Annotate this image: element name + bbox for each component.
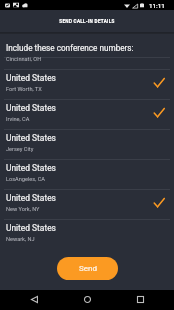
staticText: United States xyxy=(6,103,56,113)
staticText: United States xyxy=(6,133,56,143)
button[interactable]: Back xyxy=(21,289,47,309)
staticText: United States xyxy=(6,73,56,83)
staticText: Cincinnati, OH xyxy=(6,56,42,63)
button[interactable]: Send xyxy=(57,257,118,280)
button[interactable]: Home xyxy=(74,289,100,309)
button[interactable]: Cincinnati, OH xyxy=(0,58,174,69)
staticText: SEND CALL-IN DETAILS xyxy=(59,19,115,24)
button[interactable]: United States xyxy=(0,220,174,249)
button[interactable]: United States xyxy=(0,70,174,99)
staticText: Include these conference numbers: xyxy=(6,43,134,53)
staticText: LosAngeles, CA xyxy=(6,176,45,183)
staticText: Newark, NJ xyxy=(6,236,35,243)
button[interactable]: United States xyxy=(0,130,174,159)
staticText: New York, NY xyxy=(6,206,40,213)
button[interactable]: Recent apps xyxy=(127,289,153,309)
staticText: Irvine, CA xyxy=(6,116,30,123)
staticText: 11:11 xyxy=(149,2,165,9)
staticText: Jersey City xyxy=(6,146,34,153)
staticText: United States xyxy=(6,163,56,173)
button[interactable]: United States xyxy=(0,100,174,129)
staticText: United States xyxy=(6,223,56,233)
button[interactable]: United States xyxy=(0,190,174,219)
button[interactable]: United States xyxy=(0,160,174,189)
staticText: Send xyxy=(79,264,97,273)
staticText: Fort Worth, TX xyxy=(6,86,42,93)
staticText: United States xyxy=(6,193,56,203)
